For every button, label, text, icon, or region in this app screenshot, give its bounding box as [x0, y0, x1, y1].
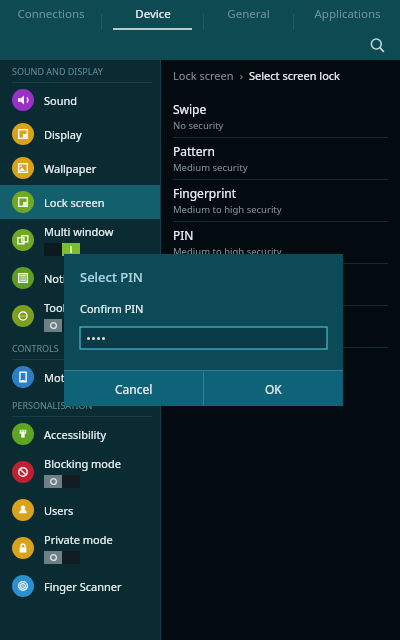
- staticText: Pattern: [173, 143, 215, 159]
- staticText: CONTROLS: [12, 342, 59, 354]
- button[interactable]: [44, 475, 80, 488]
- button[interactable]: [80, 327, 327, 349]
- staticText: Lock screen: [173, 68, 234, 83]
- staticText: PERSONALISATION: [12, 399, 93, 411]
- staticText: Applications: [314, 6, 381, 22]
- button[interactable]: Wallpaper: [0, 151, 160, 185]
- staticText: Connections: [17, 6, 85, 22]
- staticText: Finger Scanner: [44, 579, 122, 594]
- staticText: OK: [265, 381, 282, 397]
- staticText: Select screen lock: [249, 68, 340, 83]
- button[interactable]: Search: [364, 32, 390, 58]
- staticText: General: [227, 6, 270, 22]
- button[interactable]: None: [161, 306, 400, 348]
- button[interactable]: Multi window: [0, 219, 160, 261]
- staticText: Confirm PIN: [80, 301, 144, 316]
- staticText: Medium to high security: [173, 245, 282, 258]
- button[interactable]: Sound: [0, 83, 160, 117]
- button[interactable]: Device: [102, 0, 203, 30]
- staticText: Multi window: [44, 224, 114, 239]
- button[interactable]: [44, 551, 80, 564]
- staticText: None: [173, 319, 204, 335]
- button[interactable]: Blocking mode: [0, 451, 160, 493]
- staticText: Accessibility: [44, 427, 107, 442]
- staticText: Select PIN: [80, 268, 143, 286]
- staticText: SOUND AND DISPLAY: [12, 65, 103, 77]
- staticText: No security: [173, 119, 224, 132]
- button[interactable]: Motions: [0, 360, 160, 394]
- button[interactable]: Connections: [0, 0, 101, 30]
- button[interactable]: Swipe: [161, 96, 400, 138]
- button[interactable]: OK: [204, 371, 343, 406]
- button[interactable]: Password: [161, 264, 400, 306]
- staticText: Swipe: [173, 101, 207, 117]
- staticText: Medium security: [173, 161, 248, 174]
- button[interactable]: [44, 243, 80, 256]
- staticText: Lock screen: [44, 195, 105, 210]
- staticText: Cancel: [115, 381, 153, 397]
- button[interactable]: Cancel: [64, 371, 203, 406]
- staticText: PIN: [173, 227, 194, 243]
- staticText: Motions: [44, 370, 87, 385]
- button[interactable]: Pattern: [161, 138, 400, 180]
- staticText: Display: [44, 127, 82, 142]
- staticText: Users: [44, 503, 74, 518]
- staticText: Blocking mode: [44, 456, 121, 471]
- button[interactable]: Private mode: [0, 527, 160, 569]
- staticText: ›: [234, 68, 249, 83]
- button[interactable]: Display: [0, 117, 160, 151]
- staticText: Sound: [44, 93, 78, 108]
- staticText: Medium to high security: [173, 203, 282, 216]
- staticText: Notification panel: [44, 271, 136, 286]
- button[interactable]: PIN: [161, 222, 400, 264]
- button[interactable]: Accessibility: [0, 417, 160, 451]
- staticText: Fingerprint: [173, 185, 237, 201]
- button[interactable]: Lock screen: [0, 185, 160, 219]
- button[interactable]: [44, 319, 80, 332]
- staticText: Wallpaper: [44, 161, 97, 176]
- button[interactable]: Notification panel: [0, 261, 160, 295]
- button[interactable]: Fingerprint: [161, 180, 400, 222]
- staticText: Private mode: [44, 532, 113, 547]
- button[interactable]: Applications: [294, 0, 400, 30]
- button[interactable]: Finger Scanner: [0, 569, 160, 603]
- button[interactable]: General: [204, 0, 293, 30]
- button[interactable]: Toolbox: [0, 295, 160, 337]
- staticText: Device: [135, 6, 171, 22]
- button[interactable]: Users: [0, 493, 160, 527]
- staticText: Toolbox: [44, 300, 85, 315]
